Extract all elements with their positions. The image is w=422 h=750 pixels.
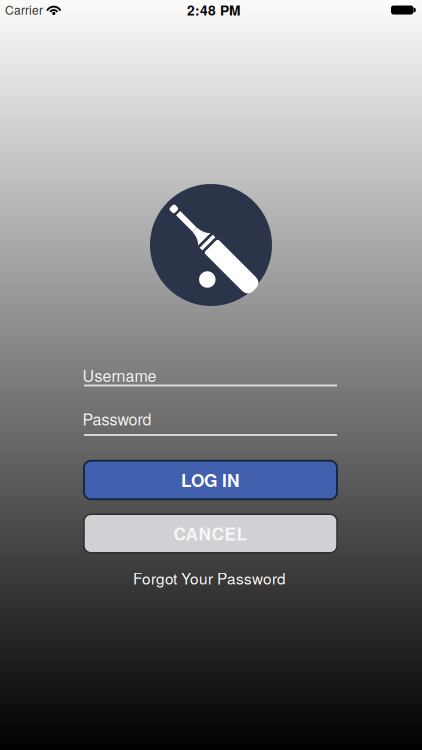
button[interactable]: CANCEL (84, 514, 337, 553)
button[interactable]: LOG IN (84, 461, 337, 499)
button[interactable]: Password (84, 407, 337, 436)
staticText: Password (82, 407, 151, 430)
staticText: 2:48 PM (187, 0, 240, 20)
staticText: Carrier (5, 1, 43, 18)
staticText: Forgot Your Password (133, 567, 286, 589)
staticText: Username (82, 363, 156, 386)
button[interactable]: Username (84, 365, 337, 387)
staticText: CANCEL (173, 521, 247, 546)
button[interactable]: Forgot Your Password (133, 567, 286, 589)
staticText: LOG IN (181, 468, 240, 492)
